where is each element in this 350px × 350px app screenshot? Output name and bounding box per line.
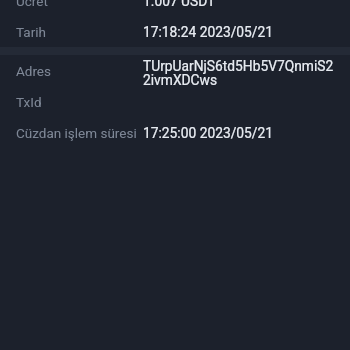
staticText: 17:25:00 2023/05/21: [143, 125, 274, 141]
staticText: Cüzdan işlem süresi: [16, 125, 137, 141]
button[interactable]: Tarih: [0, 16, 350, 47]
button[interactable]: Adres: [0, 55, 350, 86]
staticText: TxId: [16, 94, 42, 110]
staticText: 17:18:24 2023/05/21: [143, 24, 274, 40]
staticText: Adres: [16, 63, 51, 79]
staticText: TUrpUarNjS6td5Hb5V7QnmiS22ivmXDCws: [143, 58, 335, 89]
button[interactable]: Ücret: [0, 0, 350, 16]
staticText: Ücret: [16, 0, 48, 9]
staticText: 1.007 USDT: [143, 0, 216, 9]
button[interactable]: Cüzdan işlem süresi: [0, 117, 350, 148]
staticText: Tarih: [16, 24, 46, 40]
button[interactable]: TxId: [0, 86, 350, 117]
